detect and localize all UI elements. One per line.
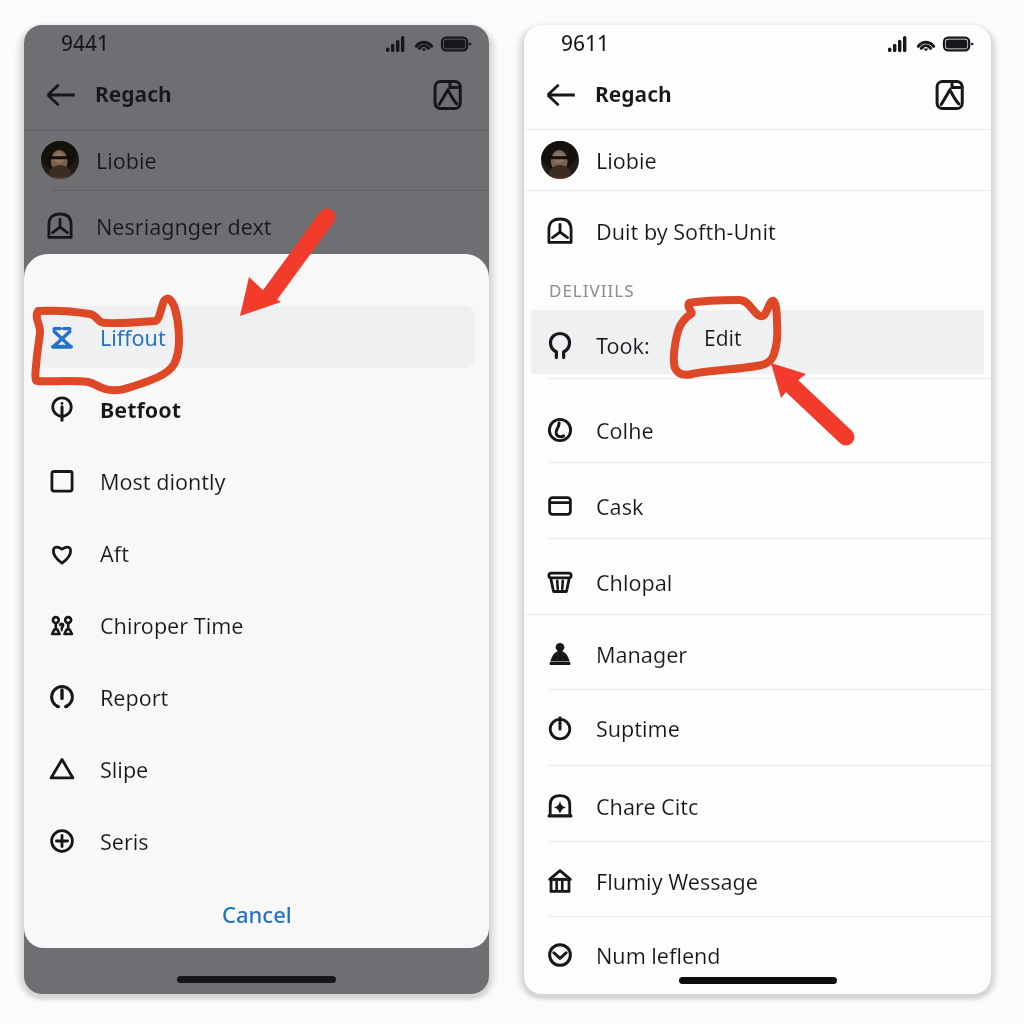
- button[interactable]: Duit by Softh-Unit: [524, 195, 991, 267]
- staticText: Most diontly: [100, 467, 226, 496]
- staticText: Num leflend: [596, 941, 721, 970]
- staticText: Regach: [595, 80, 672, 109]
- button[interactable]: Betfoot: [24, 376, 489, 442]
- staticText: Edit: [704, 324, 742, 353]
- button[interactable]: Seris: [24, 808, 489, 874]
- staticText: Liobie: [96, 146, 157, 175]
- staticText: Manager: [596, 640, 688, 669]
- button[interactable]: Cancel: [24, 884, 489, 944]
- button[interactable]: Suptime: [524, 696, 991, 760]
- button[interactable]: Manager: [524, 622, 991, 686]
- button[interactable]: Open image: [425, 72, 471, 118]
- button[interactable]: Flumiy Wessage: [524, 849, 991, 913]
- button[interactable]: Liffout: [24, 304, 489, 370]
- staticText: Aft: [100, 539, 129, 568]
- staticText: Nesriagnger dext: [96, 212, 272, 241]
- staticText: Took:: [596, 331, 650, 360]
- button[interactable]: Cask: [524, 474, 991, 538]
- staticText: Seris: [100, 827, 149, 856]
- staticText: Liobie: [596, 146, 657, 175]
- staticText: Colhe: [596, 416, 654, 445]
- staticText: DELIVIILS: [549, 279, 635, 302]
- staticText: Suptime: [596, 714, 680, 743]
- staticText: 9441: [61, 29, 110, 58]
- button[interactable]: Slipe: [24, 736, 489, 802]
- button[interactable]: Chlopal: [524, 550, 991, 614]
- staticText: Cask: [596, 492, 644, 521]
- button[interactable]: Report: [24, 664, 489, 730]
- staticText: Chiroper Time: [100, 611, 244, 640]
- button[interactable]: Open image: [927, 72, 973, 118]
- button[interactable]: Back: [538, 72, 584, 118]
- button[interactable]: Liobie: [524, 130, 991, 190]
- button[interactable]: Aft: [24, 520, 489, 586]
- staticText: Betfoot: [100, 395, 181, 424]
- button[interactable]: Most diontly: [24, 448, 489, 514]
- staticText: Flumiy Wessage: [596, 867, 758, 896]
- button[interactable]: Nesriagnger dext: [24, 190, 489, 262]
- staticText: Duit by Softh-Unit: [596, 217, 776, 246]
- button[interactable]: Num leflend: [524, 923, 991, 987]
- button[interactable]: Took:: [524, 313, 991, 377]
- staticText: Chlopal: [596, 568, 673, 597]
- button[interactable]: Chiroper Time: [24, 592, 489, 658]
- button[interactable]: Chare Citc: [524, 774, 991, 838]
- staticText: Chare Citc: [596, 792, 699, 821]
- staticText: Cancel: [222, 899, 292, 929]
- staticText: Report: [100, 683, 169, 712]
- button[interactable]: Colhe: [524, 398, 991, 462]
- button[interactable]: Back: [38, 72, 84, 118]
- staticText: Liffout: [100, 323, 166, 352]
- staticText: Regach: [95, 80, 172, 109]
- staticText: 9611: [561, 29, 610, 58]
- button[interactable]: Liobie: [24, 130, 489, 190]
- staticText: Slipe: [100, 755, 149, 784]
